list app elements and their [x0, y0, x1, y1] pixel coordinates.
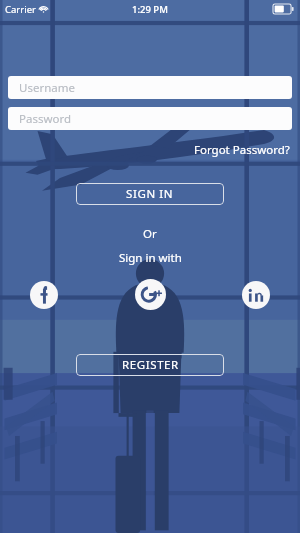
button[interactable]: Password [8, 107, 292, 130]
button[interactable]: Sign in with Google [135, 279, 166, 310]
staticText: Password [19, 111, 72, 127]
button[interactable]: Username [8, 76, 292, 99]
staticText: Sign in with [119, 250, 182, 266]
staticText: SIGN IN [126, 186, 174, 202]
staticText: Or [143, 226, 157, 242]
button[interactable]: Sign in with LinkedIn [242, 281, 270, 309]
staticText: Username [19, 80, 75, 96]
button[interactable]: SIGN IN [76, 183, 224, 205]
staticText: Forgot Password? [194, 142, 290, 158]
staticText: REGISTER [122, 357, 179, 373]
button[interactable]: REGISTER [76, 354, 224, 376]
staticText: 1:29 PM [132, 3, 168, 16]
staticText: Carrier [5, 3, 36, 16]
button[interactable]: Forgot Password? [184, 139, 300, 161]
button[interactable]: Sign in with Facebook [30, 281, 58, 309]
